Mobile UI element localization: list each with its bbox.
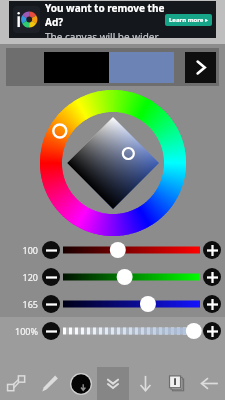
button[interactable]: Decrease: [42, 322, 60, 340]
staticText: You want to remove the Ad?: [45, 1, 165, 29]
staticText: 165: [22, 298, 38, 310]
button[interactable]: Increase: [203, 241, 221, 259]
button[interactable]: Back: [193, 367, 225, 400]
button[interactable]: 165 slider: [0, 290, 225, 317]
button[interactable]: Decrease: [42, 268, 60, 286]
button[interactable]: Decrease: [42, 241, 60, 259]
staticText: The canvas will be wider.: [45, 30, 160, 38]
button[interactable]: Layers: [161, 367, 193, 400]
button[interactable]: Colour wheel: [39, 90, 187, 236]
button[interactable]: Collapse panel: [97, 367, 129, 400]
button[interactable]: 100 slider: [0, 236, 225, 263]
button[interactable]: Brush: [33, 367, 65, 400]
button[interactable]: Save: [129, 367, 161, 400]
button[interactable]: Transform: [0, 367, 33, 400]
staticText: 120: [22, 271, 38, 283]
staticText: Learn more ▸: [169, 16, 208, 24]
button[interactable]: Learn more ▸: [165, 14, 212, 26]
button[interactable]: 120 slider: [0, 263, 225, 290]
button[interactable]: Colour: [65, 367, 97, 400]
button[interactable]: Decrease: [42, 295, 60, 313]
button[interactable]: Increase: [203, 322, 221, 340]
staticText: 100: [22, 244, 38, 256]
staticText: 100%: [15, 325, 38, 337]
button[interactable]: Increase: [203, 295, 221, 313]
button[interactable]: 100% slider: [0, 317, 225, 344]
button[interactable]: Increase: [203, 268, 221, 286]
button[interactable]: You want to remove the Ad?: [9, 1, 216, 38]
button[interactable]: More palettes: [185, 52, 216, 83]
